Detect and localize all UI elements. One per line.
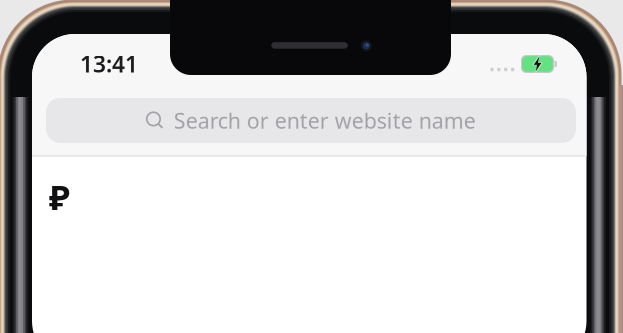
staticText: Search or enter website name [174, 106, 476, 135]
staticText: 13:41 [80, 49, 138, 79]
button[interactable]: Search or enter website name [46, 98, 576, 143]
staticText: ₽ [49, 173, 70, 219]
